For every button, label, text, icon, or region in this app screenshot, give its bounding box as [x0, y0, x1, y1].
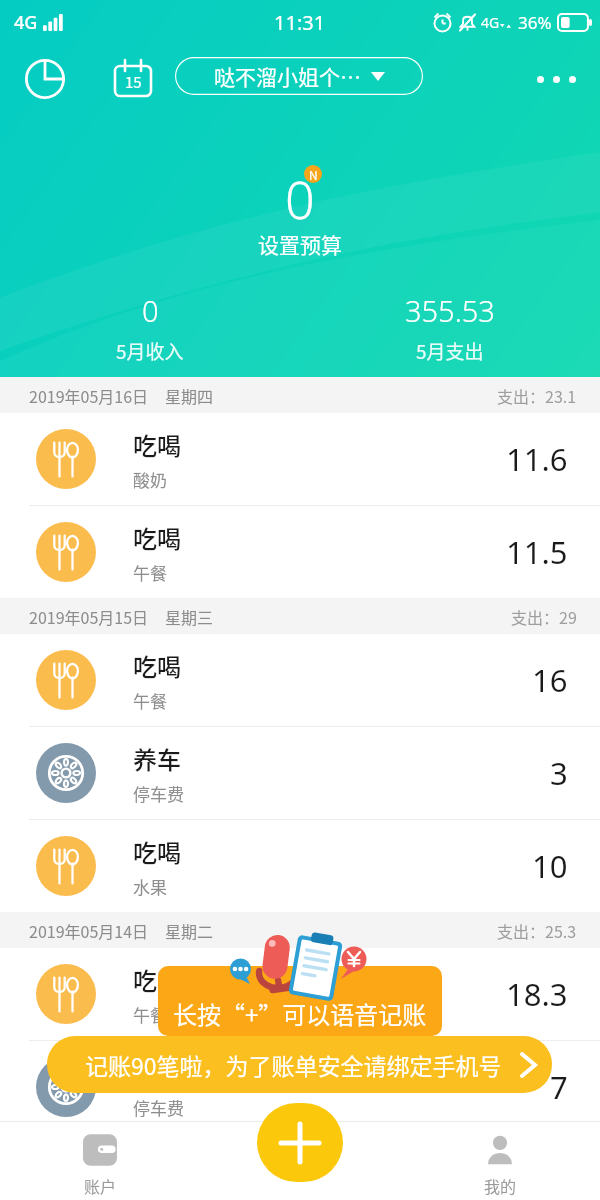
staticText: 7 [550, 1066, 568, 1108]
button[interactable]: 吃喝 [0, 634, 600, 726]
staticText: 支出：23.1 [497, 384, 577, 407]
staticText: 长按“+”可以语音记账 [173, 996, 427, 1031]
staticText: 吃喝 [133, 648, 181, 683]
staticText: 记账90笔啦，为了账单安全请绑定手机号 [85, 1048, 502, 1081]
button[interactable]: 0 [0, 291, 300, 365]
staticText: 0 [285, 163, 315, 234]
button[interactable]: 吃喝 [0, 948, 600, 1040]
staticText: 5月收入 [116, 337, 184, 365]
staticText: 15 [125, 71, 142, 93]
staticText: 11:31 [274, 9, 326, 36]
staticText: 11.6 [506, 438, 568, 480]
button[interactable]: 吃喝 [0, 506, 600, 598]
button[interactable]: 吃喝 [0, 413, 600, 505]
staticText: 3 [550, 752, 568, 794]
staticText: 停车费 [133, 781, 184, 806]
staticText: 2019年05月15日 [29, 605, 149, 628]
staticText: 16 [532, 659, 568, 701]
staticText: 支出：29 [511, 605, 577, 628]
staticText: 36% [518, 11, 552, 34]
staticText: 5月支出 [416, 337, 484, 365]
button[interactable]: 0 [0, 158, 600, 259]
staticText: 午餐 [133, 688, 167, 713]
staticText: 支出：25.3 [497, 919, 577, 942]
button[interactable]: 养车 [0, 1041, 600, 1133]
staticText: 账户 [84, 1174, 117, 1197]
staticText: 停车费 [133, 1095, 184, 1120]
button[interactable]: Calendar [112, 58, 154, 100]
staticText: 吃喝 [133, 427, 181, 462]
button[interactable]: 养车 [0, 727, 600, 819]
button[interactable]: 哒不溜小姐个… [175, 57, 423, 95]
button[interactable]: Add record [257, 1103, 343, 1182]
button[interactable]: 吃喝 [0, 820, 600, 912]
staticText: 2019年05月14日 [29, 919, 149, 942]
button[interactable]: 长按“+”可以语音记账 [158, 966, 442, 1036]
staticText: 午餐 [133, 560, 167, 585]
button[interactable]: 我的 [400, 1121, 600, 1200]
button[interactable]: 记账90笔啦，为了账单安全请绑定手机号 [47, 1036, 552, 1093]
staticText: N [309, 166, 318, 183]
button[interactable]: Statistics [24, 58, 66, 100]
staticText: 4G [14, 10, 38, 35]
staticText: 养车 [133, 1055, 181, 1090]
staticText: 11.5 [506, 531, 568, 573]
staticText: 18.3 [506, 973, 568, 1015]
staticText: 10 [532, 845, 568, 887]
staticText: 哒不溜小姐个… [214, 61, 361, 91]
staticText: 星期三 [165, 605, 214, 628]
button[interactable]: 账户 [0, 1121, 200, 1200]
staticText: 吃喝 [133, 834, 181, 869]
staticText: 养车 [133, 741, 181, 776]
staticText: 星期四 [165, 384, 214, 407]
staticText: 355.53 [405, 291, 495, 330]
staticText: 吃喝 [133, 962, 181, 997]
staticText: 吃喝 [133, 520, 181, 555]
staticText: 设置预算 [258, 229, 342, 259]
staticText: 酸奶 [133, 467, 167, 492]
staticText: 午餐 [133, 1002, 167, 1027]
staticText: 0 [142, 291, 159, 330]
button[interactable]: 355.53 [300, 291, 600, 365]
staticText: 4G [481, 13, 500, 32]
staticText: 星期二 [165, 919, 214, 942]
button[interactable]: More options [528, 58, 584, 100]
staticText: 我的 [484, 1174, 517, 1197]
staticText: 2019年05月16日 [29, 384, 149, 407]
staticText: 水果 [133, 874, 167, 899]
